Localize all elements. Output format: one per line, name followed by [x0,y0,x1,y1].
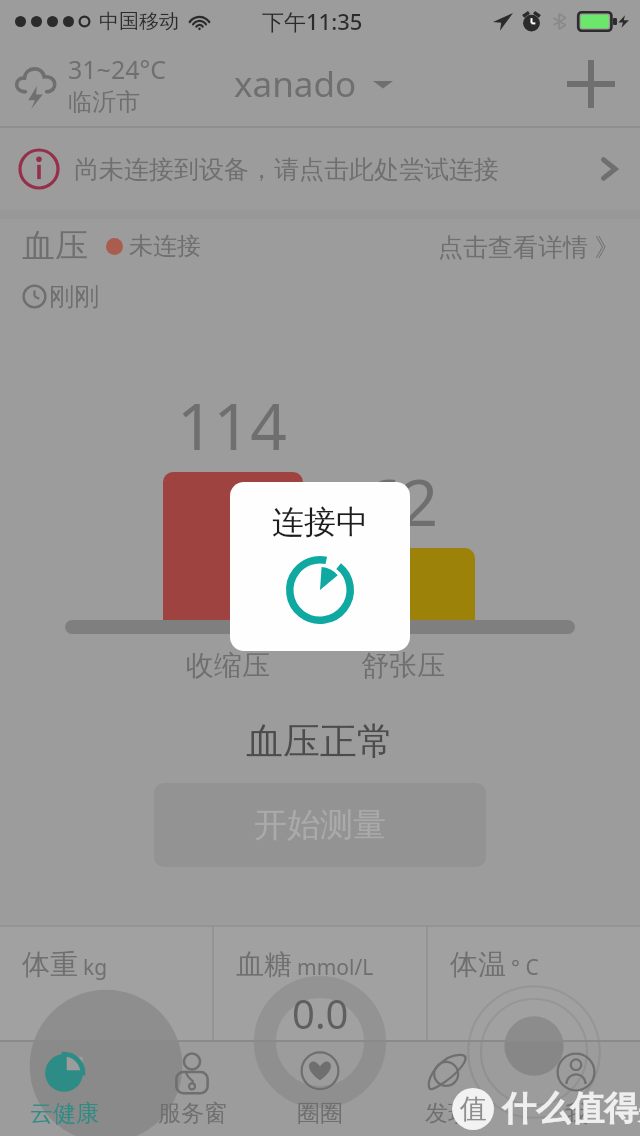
button[interactable]: 我 [512,1042,640,1136]
staticText: 31~24°C [68,52,167,86]
staticText: 临沂市 [68,87,140,117]
button[interactable]: 尚未连接到设备，请点击此处尝试连接 [0,128,640,210]
staticText: 62 [365,458,439,545]
button[interactable]: 血糖 [214,927,426,1040]
staticText: 114 [177,382,287,469]
staticText: 血压正常 [0,718,640,765]
staticText: 体温 [450,947,506,982]
button[interactable]: 开始测量 [154,783,486,867]
staticText: xanado [234,60,357,108]
button[interactable]: Add device [562,55,620,113]
staticText: 血糖 [236,947,292,982]
staticText: 点击查看详情 》 [438,229,620,263]
button[interactable]: 服务窗 [128,1042,256,1136]
staticText: 服务窗 [158,1099,227,1128]
staticText: 未连接 [129,231,201,261]
button[interactable]: 点击查看详情 》 [438,229,620,263]
button[interactable]: 发现 [384,1042,512,1136]
staticText: 我 [565,1099,588,1128]
button[interactable]: xanado [234,60,394,108]
button[interactable]: 体温 [428,927,640,1040]
staticText: ° C [511,953,539,982]
staticText: kg [83,953,108,982]
staticText: 值 [460,1092,487,1126]
staticText: 圈圈 [297,1099,343,1128]
staticText: mmol/L [297,953,374,982]
staticText: 下午11:35 [262,6,363,36]
button[interactable]: 云健康 [0,1042,128,1136]
staticText: 开始测量 [254,804,386,846]
button[interactable]: 体重 [0,927,212,1040]
button[interactable]: 31~24°C [12,52,167,117]
staticText: 舒张压 [361,648,445,683]
staticText: 尚未连接到设备，请点击此处尝试连接 [74,154,499,185]
staticText: 刚刚 [49,281,99,312]
staticText: 体重 [22,947,78,982]
staticText: 什么值得买 [502,1087,640,1130]
staticText: 中国移动 [99,9,179,34]
staticText: 0.0 [292,986,349,1040]
staticText: 连接中 [272,502,368,542]
staticText: 发现 [425,1099,471,1128]
button[interactable]: 圈圈 [256,1042,384,1136]
staticText: 收缩压 [186,648,270,683]
staticText: 血压 [22,225,88,267]
staticText: 云健康 [30,1099,99,1128]
